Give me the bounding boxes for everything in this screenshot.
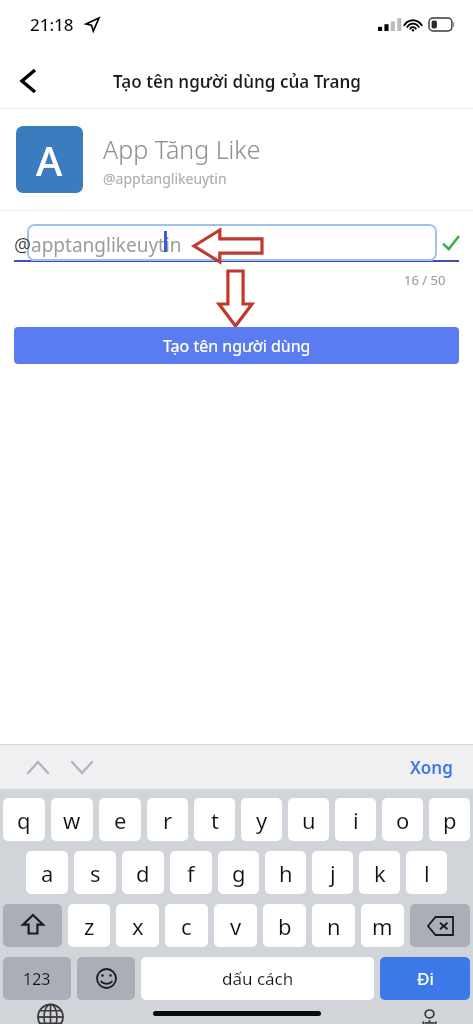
button[interactable]: x	[116, 904, 159, 947]
button[interactable]: t	[194, 798, 235, 841]
button[interactable]: s	[74, 851, 116, 894]
button[interactable]: l	[406, 851, 447, 894]
staticText: c	[181, 911, 192, 941]
staticText: k	[374, 858, 386, 888]
staticText: w	[63, 805, 81, 835]
staticText: n	[327, 911, 341, 941]
staticText: Tạo tên người dùng của Trang	[113, 70, 361, 93]
staticText: r	[163, 805, 173, 835]
button[interactable]: Voice input	[409, 1010, 449, 1024]
button[interactable]: k	[359, 851, 400, 894]
staticText: s	[90, 858, 101, 888]
button[interactable]: r	[147, 798, 188, 841]
button[interactable]: g	[218, 851, 259, 894]
button[interactable]: p	[429, 798, 470, 841]
staticText: @apptanglikeuytin	[103, 169, 227, 188]
button[interactable]: Change keyboard language	[30, 1010, 70, 1024]
staticText: j	[330, 858, 336, 888]
staticText: 21:18	[30, 13, 74, 36]
staticText: @	[14, 232, 32, 258]
button[interactable]: h	[265, 851, 306, 894]
staticText: Đi	[417, 967, 434, 990]
button[interactable]: v	[214, 904, 257, 947]
button[interactable]: Đi	[380, 957, 470, 1000]
staticText: 123	[23, 968, 51, 990]
staticText: o	[396, 805, 410, 835]
staticText: q	[17, 805, 31, 835]
button[interactable]: Emoji	[77, 957, 135, 1000]
button[interactable]: n	[312, 904, 355, 947]
staticText: e	[114, 805, 127, 835]
staticText: f	[187, 858, 195, 888]
button[interactable]: i	[335, 798, 376, 841]
staticText: i	[353, 805, 359, 835]
staticText: Xong	[410, 756, 453, 779]
button[interactable]: f	[170, 851, 212, 894]
staticText: a	[41, 858, 54, 888]
button[interactable]	[27, 224, 437, 261]
staticText: dấu cách	[222, 967, 294, 990]
staticText: A	[36, 133, 63, 187]
button[interactable]: Next field	[62, 747, 102, 787]
button[interactable]: a	[26, 851, 68, 894]
staticText: m	[372, 911, 393, 941]
button[interactable]: m	[361, 904, 404, 947]
staticText: t	[211, 805, 219, 835]
button[interactable]: Back	[0, 54, 56, 108]
button[interactable]: z	[68, 904, 110, 947]
button[interactable]: y	[241, 798, 282, 841]
staticText: b	[278, 911, 292, 941]
staticText: g	[232, 858, 246, 888]
staticText: l	[424, 858, 430, 888]
button[interactable]: j	[312, 851, 353, 894]
staticText: y	[256, 805, 268, 835]
button[interactable]: o	[382, 798, 423, 841]
button[interactable]: c	[165, 904, 208, 947]
button[interactable]: Xong	[404, 750, 459, 785]
button[interactable]: q	[3, 798, 45, 841]
button[interactable]: 123	[3, 957, 71, 1000]
staticText: d	[136, 858, 150, 888]
button[interactable]: Previous field	[18, 747, 58, 787]
staticText: u	[302, 805, 316, 835]
button[interactable]: Backspace	[410, 904, 470, 947]
button[interactable]: u	[288, 798, 329, 841]
button[interactable]: Tạo tên người dùng	[14, 327, 459, 364]
staticText: x	[132, 911, 144, 941]
button[interactable]: b	[263, 904, 306, 947]
staticText: 16 / 50	[404, 271, 446, 289]
button[interactable]: e	[99, 798, 141, 841]
button[interactable]: d	[122, 851, 164, 894]
staticText: Tạo tên người dùng	[163, 335, 311, 357]
staticText: apptanglikeuytin	[31, 232, 182, 258]
button[interactable]: A	[0, 109, 473, 210]
button[interactable]: w	[51, 798, 93, 841]
staticText: h	[279, 858, 293, 888]
staticText: p	[443, 805, 457, 835]
staticText: v	[230, 911, 242, 941]
button[interactable]: Shift	[3, 904, 62, 947]
staticText: App Tăng Like	[103, 132, 261, 166]
button[interactable]: dấu cách	[141, 957, 374, 1000]
staticText: z	[84, 911, 95, 941]
